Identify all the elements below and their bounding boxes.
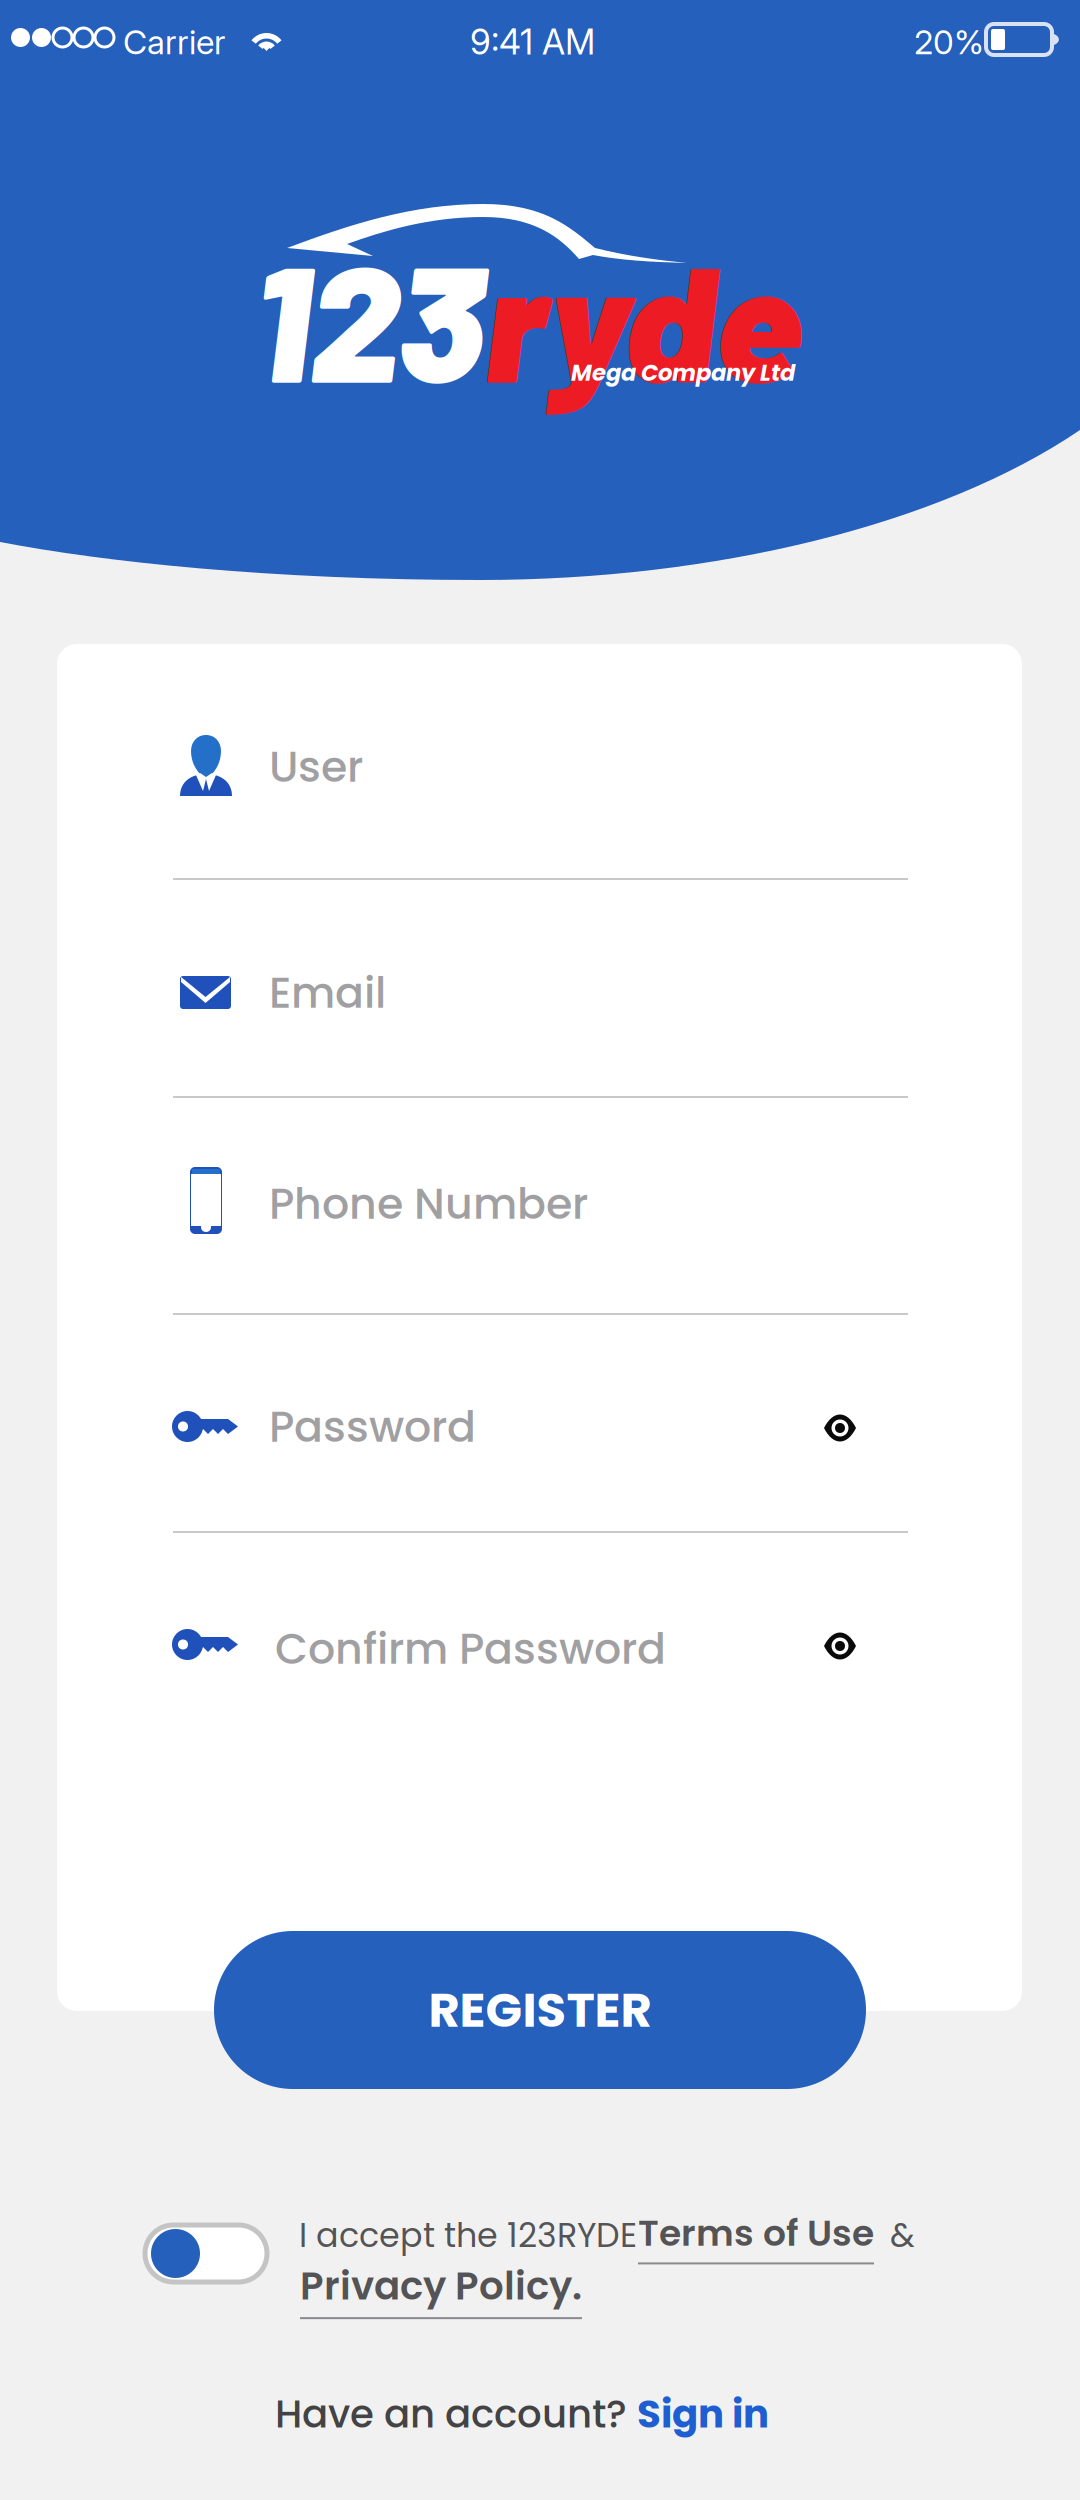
button[interactable]: Show confirm password	[810, 1621, 870, 1671]
button[interactable]: Privacy Policy.	[300, 2259, 582, 2319]
staticText: 9:41 AM	[470, 21, 595, 63]
staticText: Email	[269, 963, 386, 1023]
staticText: Mega Company Ltd	[571, 357, 795, 389]
staticText: Privacy Policy.	[300, 2259, 582, 2313]
staticText: Terms of Use	[638, 2208, 874, 2258]
staticText: Have an account?	[275, 2387, 637, 2441]
button[interactable]: Accept terms	[145, 2225, 267, 2282]
staticText: User	[269, 737, 363, 797]
staticText: I accept the 123RYDE	[299, 2212, 637, 2259]
staticText: Carrier	[123, 22, 225, 62]
staticText: &	[890, 2212, 915, 2259]
staticText: Phone Number	[269, 1174, 588, 1234]
staticText: 20%	[914, 22, 984, 62]
staticText: REGISTER	[428, 1976, 651, 2044]
staticText: 123	[253, 220, 485, 415]
button[interactable]: Sign in	[637, 2387, 769, 2441]
staticText: Password	[269, 1397, 476, 1457]
staticText: Sign in	[637, 2387, 769, 2441]
button[interactable]: Show password	[810, 1403, 870, 1453]
staticText: Confirm Password	[275, 1619, 666, 1679]
staticText: ryde	[485, 220, 802, 415]
button[interactable]: REGISTER	[214, 1931, 866, 2089]
button[interactable]: Terms of Use	[638, 2208, 874, 2264]
